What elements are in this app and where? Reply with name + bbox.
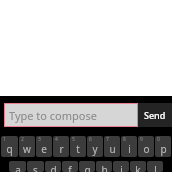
staticText: 6 xyxy=(89,136,92,143)
staticText: d xyxy=(50,163,57,172)
button[interactable]: f xyxy=(62,161,78,172)
staticText: s xyxy=(33,163,38,172)
staticText: p xyxy=(160,142,167,156)
button[interactable]: k xyxy=(130,161,146,172)
button[interactable]: j xyxy=(113,161,129,172)
staticText: w xyxy=(23,142,31,156)
button[interactable]: 1 xyxy=(1,136,18,157)
staticText: a xyxy=(15,163,21,172)
button[interactable]: 4 xyxy=(53,136,69,157)
staticText: 1 xyxy=(3,136,6,143)
button[interactable]: 6 xyxy=(87,136,103,157)
button[interactable]: 2 xyxy=(19,136,35,157)
button[interactable]: g xyxy=(79,161,95,172)
staticText: Send xyxy=(144,109,166,121)
button[interactable]: l xyxy=(147,161,163,172)
button[interactable]: 0 xyxy=(155,136,171,157)
staticText: h xyxy=(101,163,108,172)
staticText: 2 xyxy=(21,136,24,143)
button[interactable]: Type to compose xyxy=(4,103,138,127)
staticText: q xyxy=(6,142,13,156)
staticText: 8 xyxy=(123,136,126,143)
button[interactable]: 9 xyxy=(138,136,154,157)
staticText: i xyxy=(128,142,131,156)
button[interactable]: a xyxy=(9,161,26,172)
staticText: l xyxy=(154,163,157,172)
staticText: r xyxy=(59,142,64,156)
button[interactable]: 5 xyxy=(70,136,86,157)
button[interactable]: Send xyxy=(138,103,172,127)
staticText: Type to compose xyxy=(9,108,97,123)
button[interactable]: 8 xyxy=(121,136,137,157)
staticText: u xyxy=(109,142,116,156)
staticText: j xyxy=(120,163,123,172)
staticText: e xyxy=(41,142,47,156)
staticText: 4 xyxy=(55,136,58,143)
staticText: k xyxy=(135,163,141,172)
staticText: y xyxy=(92,142,98,156)
staticText: 3 xyxy=(38,136,41,143)
button[interactable]: 7 xyxy=(104,136,120,157)
staticText: 5 xyxy=(72,136,75,143)
staticText: 7 xyxy=(106,136,109,143)
button[interactable]: h xyxy=(96,161,112,172)
staticText: g xyxy=(84,163,91,172)
staticText: f xyxy=(68,163,72,172)
staticText: 0 xyxy=(157,136,160,143)
button[interactable]: 3 xyxy=(36,136,52,157)
button[interactable]: s xyxy=(27,161,44,172)
button[interactable]: d xyxy=(45,161,61,172)
staticText: 9 xyxy=(140,136,143,143)
staticText: t xyxy=(76,142,80,156)
staticText: o xyxy=(143,142,150,156)
